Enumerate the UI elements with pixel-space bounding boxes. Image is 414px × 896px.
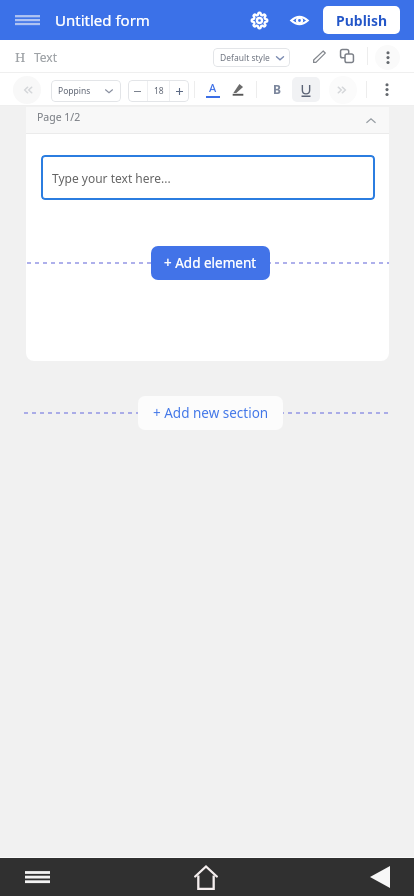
- button[interactable]: More options: [375, 45, 400, 70]
- button[interactable]: Publish: [323, 6, 400, 34]
- staticText: + Add new section: [153, 404, 269, 422]
- staticText: Type your text here...: [52, 170, 171, 186]
- button[interactable]: Collapse page: [359, 109, 383, 133]
- staticText: + Add element: [164, 254, 257, 272]
- button[interactable]: Text color: [200, 76, 226, 102]
- button[interactable]: B: [264, 76, 290, 102]
- button[interactable]: Back: [360, 858, 400, 896]
- button[interactable]: H: [15, 40, 58, 73]
- button[interactable]: + Add new section: [138, 396, 283, 430]
- button[interactable]: Duplicate: [334, 43, 360, 69]
- button[interactable]: Type your text here...: [41, 155, 375, 200]
- button[interactable]: Edit: [306, 43, 332, 69]
- button[interactable]: Poppins: [51, 80, 121, 102]
- staticText: Poppins: [58, 85, 91, 97]
- staticText: A: [209, 80, 217, 95]
- button[interactable]: More options: [374, 76, 400, 102]
- staticText: Untitled form: [55, 10, 150, 30]
- button[interactable]: More formatting: [329, 76, 357, 104]
- button[interactable]: Settings: [239, 0, 279, 40]
- staticText: Page 1/2: [37, 110, 81, 124]
- staticText: B: [273, 81, 281, 97]
- button[interactable]: [292, 77, 320, 102]
- staticText: Publish: [336, 11, 388, 30]
- staticText: Default style: [220, 52, 270, 64]
- button[interactable]: Decrease font size: [128, 80, 147, 102]
- button[interactable]: Recent apps: [17, 858, 57, 896]
- button[interactable]: Highlight color: [225, 76, 251, 102]
- button[interactable]: Home: [186, 858, 226, 896]
- button[interactable]: Collapse toolbar: [13, 76, 41, 104]
- button[interactable]: Menu: [0, 0, 55, 40]
- button[interactable]: + Add element: [151, 246, 270, 280]
- staticText: H: [15, 48, 26, 66]
- button[interactable]: Increase font size: [170, 80, 189, 102]
- button[interactable]: Preview: [279, 0, 319, 40]
- staticText: 18: [154, 85, 164, 97]
- staticText: Text: [34, 49, 58, 65]
- button[interactable]: Default style: [213, 48, 290, 67]
